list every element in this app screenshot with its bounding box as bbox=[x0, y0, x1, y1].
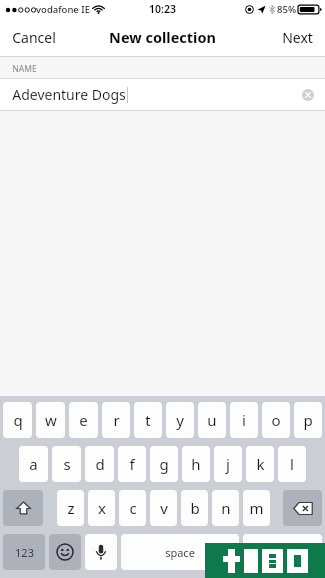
button[interactable]: space bbox=[121, 534, 239, 570]
button[interactable]: Next bbox=[270, 18, 325, 56]
button[interactable]: 123 bbox=[3, 534, 45, 570]
button[interactable]: Backspace bbox=[283, 490, 322, 526]
button[interactable]: j bbox=[214, 446, 242, 482]
button[interactable]: Adeventure Dogs bbox=[0, 79, 325, 110]
staticText: o bbox=[271, 410, 281, 430]
staticText: b bbox=[190, 498, 200, 518]
staticText: n bbox=[221, 498, 231, 518]
staticText: w bbox=[45, 410, 57, 430]
staticText: t bbox=[145, 410, 151, 430]
button[interactable]: s bbox=[52, 446, 81, 482]
staticText: a bbox=[29, 454, 38, 474]
button[interactable]: x bbox=[88, 490, 115, 526]
button[interactable]: Clear text bbox=[302, 89, 314, 101]
staticText: s bbox=[63, 454, 71, 474]
button[interactable]: e bbox=[69, 402, 98, 438]
button[interactable]: d bbox=[85, 446, 114, 482]
staticText: e bbox=[79, 410, 88, 430]
staticText: h bbox=[191, 454, 201, 474]
staticText: z bbox=[67, 498, 75, 518]
staticText: Cancel bbox=[12, 28, 56, 47]
button[interactable]: r bbox=[102, 402, 130, 438]
staticText: d bbox=[95, 454, 105, 474]
button[interactable]: v bbox=[150, 490, 177, 526]
button[interactable]: Shift bbox=[3, 490, 43, 526]
staticText: k bbox=[256, 454, 265, 474]
button[interactable]: z bbox=[57, 490, 84, 526]
staticText: New collection bbox=[109, 27, 216, 47]
staticText: NAME bbox=[12, 63, 37, 75]
button[interactable]: y bbox=[166, 402, 194, 438]
staticText: j bbox=[226, 454, 230, 474]
staticText: l bbox=[290, 454, 294, 474]
staticText: p bbox=[303, 410, 313, 430]
staticText: 10:23 bbox=[149, 2, 176, 16]
staticText: g bbox=[159, 454, 169, 474]
button[interactable]: a bbox=[19, 446, 48, 482]
staticText: q bbox=[13, 410, 23, 430]
staticText: Next bbox=[282, 28, 313, 47]
staticText: u bbox=[207, 410, 217, 430]
staticText: 85% bbox=[277, 3, 296, 16]
button[interactable]: p bbox=[294, 402, 322, 438]
button[interactable]: o bbox=[262, 402, 290, 438]
staticText: m bbox=[249, 498, 264, 518]
button[interactable]: t bbox=[134, 402, 162, 438]
button[interactable]: i bbox=[230, 402, 258, 438]
button[interactable]: m bbox=[243, 490, 270, 526]
staticText: space bbox=[165, 545, 195, 560]
button[interactable]: Emoji keyboard bbox=[49, 534, 81, 570]
staticText: x bbox=[98, 498, 106, 518]
button[interactable]: n bbox=[212, 490, 239, 526]
button[interactable]: k bbox=[246, 446, 274, 482]
button[interactable]: g bbox=[150, 446, 178, 482]
button[interactable]: Dictation bbox=[85, 534, 117, 570]
button[interactable]: Cancel bbox=[0, 18, 68, 56]
staticText: Adeventure Dogs bbox=[12, 85, 126, 104]
staticText: vodafone IE bbox=[36, 3, 90, 16]
button[interactable]: u bbox=[198, 402, 226, 438]
staticText: 123 bbox=[15, 545, 34, 560]
staticText: r bbox=[113, 410, 120, 430]
button[interactable]: f bbox=[118, 446, 146, 482]
staticText: i bbox=[242, 410, 246, 430]
staticText: f bbox=[129, 454, 135, 474]
button[interactable]: b bbox=[181, 490, 208, 526]
button[interactable]: h bbox=[182, 446, 210, 482]
button[interactable]: w bbox=[36, 402, 65, 438]
button[interactable]: q bbox=[3, 402, 32, 438]
staticText: c bbox=[129, 498, 137, 518]
staticText: v bbox=[160, 498, 168, 518]
button[interactable]: l bbox=[278, 446, 306, 482]
staticText: y bbox=[176, 410, 184, 430]
button[interactable]: c bbox=[119, 490, 146, 526]
button[interactable] bbox=[243, 534, 322, 570]
